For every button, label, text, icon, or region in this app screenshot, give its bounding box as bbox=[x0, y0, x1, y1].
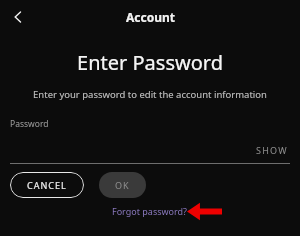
staticText: Account bbox=[126, 9, 175, 25]
button[interactable]: CANCEL bbox=[10, 172, 84, 198]
staticText: Password bbox=[10, 118, 49, 130]
button[interactable]: Back bbox=[4, 3, 32, 31]
staticText: Forgot password? bbox=[112, 205, 188, 217]
staticText: SHOW bbox=[256, 144, 288, 156]
staticText: Enter your password to edit the account … bbox=[33, 88, 267, 101]
button[interactable]: OK bbox=[99, 172, 146, 198]
staticText: Enter Password bbox=[77, 49, 223, 76]
button[interactable]: SHOW bbox=[254, 142, 290, 158]
button[interactable]: Forgot password? bbox=[110, 203, 190, 219]
staticText: CANCEL bbox=[27, 179, 67, 191]
staticText: OK bbox=[115, 179, 130, 191]
